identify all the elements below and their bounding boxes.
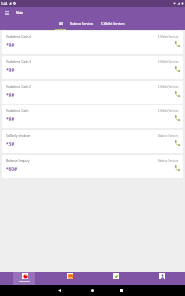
staticText: *3# <box>6 141 15 148</box>
staticText: 5:44 <box>1 2 8 6</box>
button[interactable]: Sa7bely shokran <box>2 130 183 153</box>
staticText: Vodafone Cash 2 <box>6 85 32 89</box>
staticText: *9# <box>6 67 15 74</box>
staticText: Vodafone <box>19 279 30 282</box>
button[interactable]: We <box>139 272 185 285</box>
button[interactable]: Back <box>55 286 64 295</box>
button[interactable]: Recent apps <box>117 286 126 295</box>
button[interactable]: Open navigation menu <box>2 8 12 18</box>
button[interactable]: E-Wallet Services <box>101 18 125 30</box>
button[interactable]: Balance Inquiry <box>2 155 183 178</box>
staticText: Main <box>16 11 24 15</box>
staticText: E-Wallet Services <box>158 109 179 113</box>
staticText: Balance Services <box>70 22 94 26</box>
staticText: Vodafone Cash 3 <box>6 60 32 64</box>
staticText: *9# <box>6 42 15 49</box>
button[interactable]: All <box>55 18 66 30</box>
staticText: E-Wallet Services <box>158 85 179 89</box>
staticText: All <box>59 22 63 26</box>
staticText: *9# <box>6 92 15 99</box>
staticText: E-Wallet Services <box>158 35 179 39</box>
staticText: Balance Services <box>158 134 179 138</box>
staticText: Balance Services <box>158 159 179 163</box>
button[interactable]: Vodafone Cash 3 <box>2 56 183 79</box>
button[interactable]: Etisalat <box>93 272 139 285</box>
staticText: E-Wallet Services <box>101 22 125 26</box>
button[interactable]: Vodafone <box>0 272 47 285</box>
button[interactable]: Home <box>88 286 97 295</box>
staticText: Vodafone Cash <box>6 109 29 113</box>
button[interactable]: Vodafone Cash 4 <box>2 31 183 54</box>
staticText: *9# <box>6 116 15 123</box>
staticText: E-Wallet Services <box>158 60 179 64</box>
staticText: Sa7bely shokran <box>6 134 31 138</box>
staticText: Vodafone Cash 4 <box>6 35 32 39</box>
button[interactable]: Vodafone Cash 2 <box>2 81 183 104</box>
button[interactable]: Balance Services <box>70 18 94 30</box>
staticText: Balance Inquiry <box>6 159 30 163</box>
staticText: *60# <box>6 166 18 173</box>
button[interactable]: Vodafone Cash <box>2 105 183 128</box>
button[interactable]: Orange <box>47 272 93 285</box>
